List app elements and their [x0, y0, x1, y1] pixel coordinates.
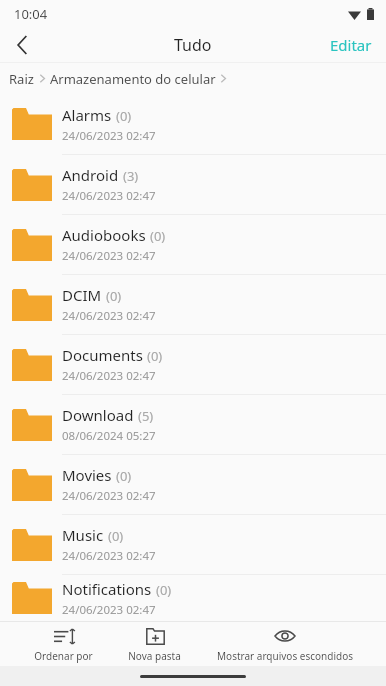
staticText: 08/06/2024 05:27	[62, 428, 156, 444]
button[interactable]: Editar	[330, 35, 372, 55]
staticText: Mostrar arquivos escondidos	[217, 649, 353, 663]
staticText: 24/06/2023 02:47	[62, 488, 156, 504]
staticText: Ordenar por	[34, 649, 93, 663]
button[interactable]: Ordenar por	[34, 626, 93, 663]
staticText: Notifications	[62, 579, 152, 599]
button[interactable]: Music	[0, 515, 386, 574]
staticText: Android	[62, 165, 119, 185]
staticText: 24/06/2023 02:47	[62, 248, 156, 264]
button[interactable]: Audiobooks	[0, 215, 386, 274]
button[interactable]: Android	[0, 155, 386, 214]
button[interactable]: Download	[0, 395, 386, 454]
staticText: Editar	[330, 35, 372, 55]
button[interactable]: Alarms	[0, 94, 386, 154]
staticText: Music	[62, 525, 104, 545]
button[interactable]: Nova pasta	[128, 626, 181, 663]
button[interactable]: Mostrar arquivos escondidos	[217, 626, 353, 663]
staticText: (0)	[156, 581, 172, 599]
staticText: (0)	[116, 107, 132, 125]
button[interactable]: Movies	[0, 455, 386, 514]
staticText: Documents	[62, 345, 143, 365]
staticText: (3)	[123, 167, 139, 185]
staticText: 24/06/2023 02:47	[62, 188, 156, 204]
staticText: 24/06/2023 02:47	[62, 308, 156, 324]
button[interactable]: Notifications	[0, 575, 386, 621]
staticText: 24/06/2023 02:47	[62, 602, 156, 618]
staticText: 24/06/2023 02:47	[62, 368, 156, 384]
staticText: Audiobooks	[62, 225, 146, 245]
staticText: Tudo	[174, 34, 212, 56]
staticText: DCIM	[62, 285, 102, 305]
staticText: Download	[62, 405, 134, 425]
button[interactable]: Raiz	[9, 70, 34, 88]
staticText: (0)	[147, 347, 163, 365]
staticText: 24/06/2023 02:47	[62, 128, 156, 144]
staticText: (0)	[108, 527, 124, 545]
staticText: Movies	[62, 465, 112, 485]
button[interactable]: Documents	[0, 335, 386, 394]
staticText: (0)	[106, 287, 122, 305]
staticText: 24/06/2023 02:47	[62, 548, 156, 564]
button[interactable]: DCIM	[0, 275, 386, 334]
button[interactable]: Armazenamento do celular	[50, 70, 216, 88]
staticText: Armazenamento do celular	[50, 70, 216, 88]
staticText: Nova pasta	[128, 649, 181, 663]
button[interactable]: Back	[0, 28, 44, 62]
staticText: Raiz	[9, 70, 34, 88]
staticText: (0)	[116, 467, 132, 485]
staticText: (5)	[138, 407, 154, 425]
staticText: 10:04	[14, 5, 48, 23]
staticText: (0)	[150, 227, 166, 245]
staticText: Alarms	[62, 105, 112, 125]
